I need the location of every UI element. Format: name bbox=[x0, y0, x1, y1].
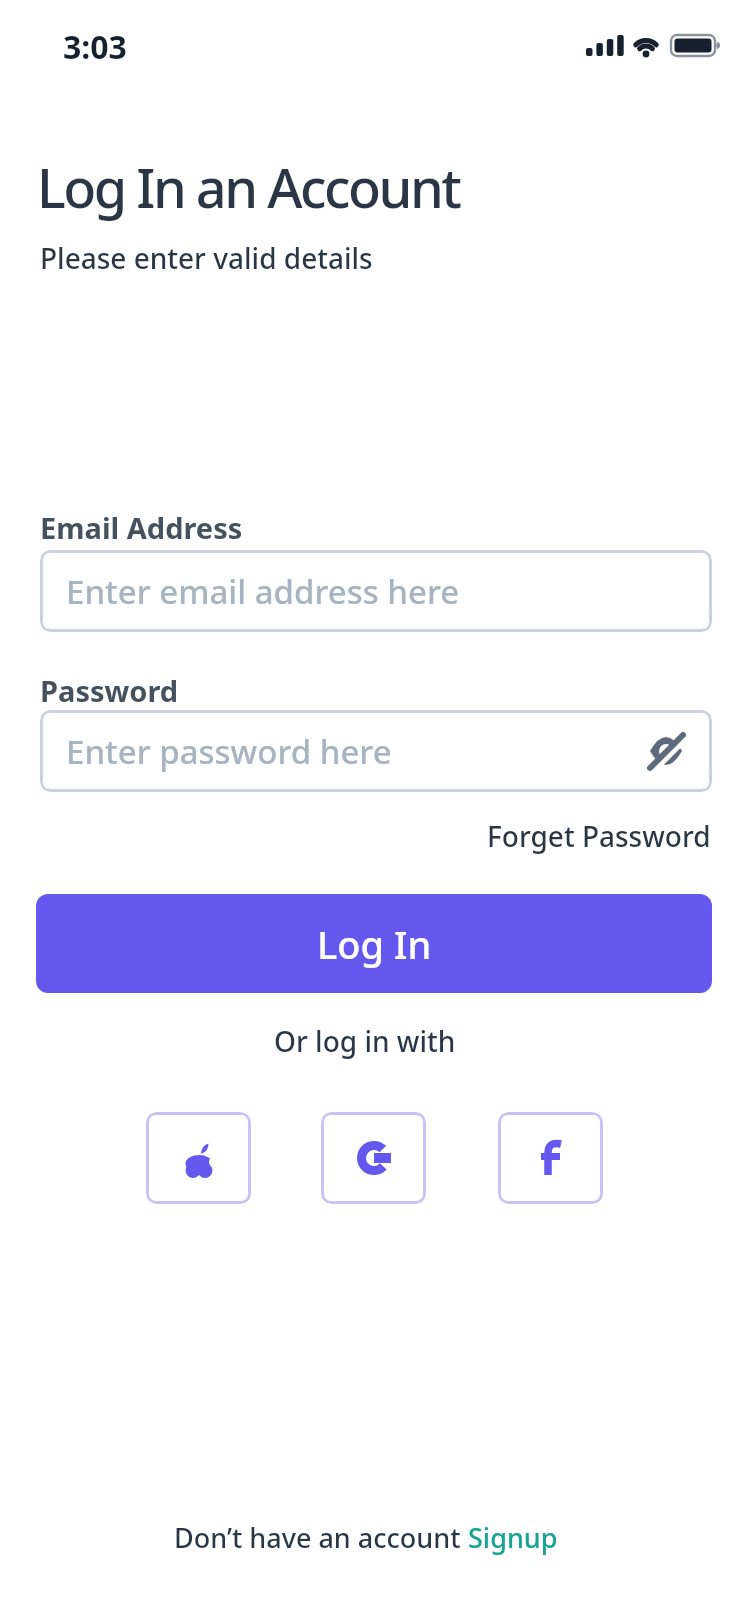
button[interactable]: Don’t have an account bbox=[0, 1519, 742, 1556]
staticText: Don’t have an account bbox=[174, 1519, 468, 1556]
staticText: Log In an Account bbox=[37, 150, 460, 224]
staticText: Or log in with bbox=[274, 1022, 456, 1060]
button[interactable]: Log In bbox=[36, 894, 712, 993]
staticText: Enter email address here bbox=[66, 569, 460, 614]
staticText: Please enter valid details bbox=[40, 239, 373, 277]
staticText: Email Address bbox=[40, 508, 243, 547]
staticText: Signup bbox=[468, 1519, 558, 1556]
staticText: 3:03 bbox=[63, 25, 127, 69]
staticText: Forget Password bbox=[487, 817, 711, 855]
staticText: Log In bbox=[317, 918, 432, 970]
button[interactable] bbox=[321, 1112, 426, 1204]
button[interactable] bbox=[498, 1112, 603, 1204]
button[interactable]: Forget Password bbox=[0, 817, 711, 855]
button[interactable]: Enter email address here bbox=[40, 550, 712, 632]
button[interactable] bbox=[146, 1112, 251, 1204]
staticText: Password bbox=[40, 671, 179, 710]
button[interactable]: Enter password here bbox=[40, 710, 712, 792]
staticText: Enter password here bbox=[66, 729, 392, 774]
